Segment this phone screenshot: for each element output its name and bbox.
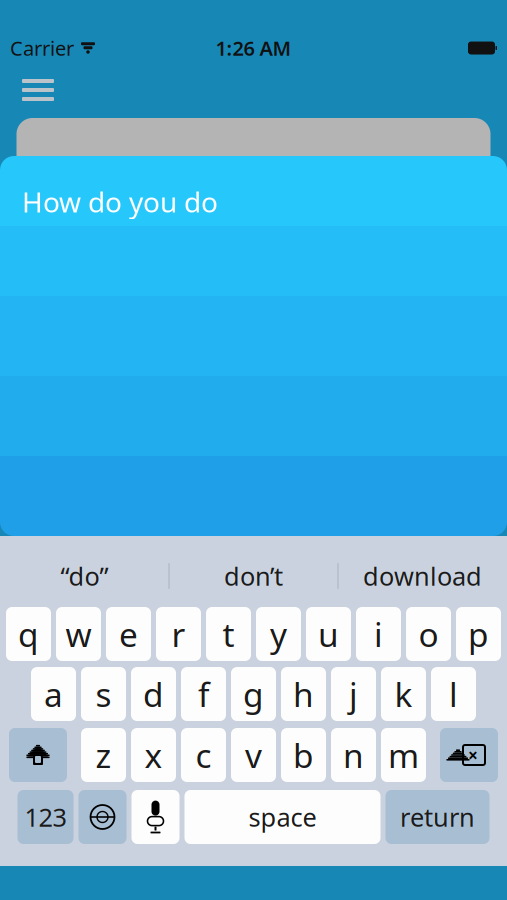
staticText: p	[468, 612, 489, 656]
button[interactable]: Shift	[9, 728, 67, 782]
staticText: m	[388, 733, 419, 777]
button[interactable]: Menu	[14, 71, 62, 109]
staticText: download	[363, 559, 482, 593]
staticText: s	[95, 672, 111, 716]
staticText: “do”	[60, 559, 108, 593]
button[interactable]: m	[381, 728, 426, 782]
staticText: ×	[468, 743, 478, 766]
button[interactable]: return	[385, 790, 489, 844]
button[interactable]: k	[381, 667, 426, 721]
staticText: j	[349, 672, 358, 716]
staticText: 123	[24, 800, 66, 834]
staticText: h	[293, 672, 314, 716]
staticText: v	[245, 733, 262, 777]
button[interactable]: h	[281, 667, 326, 721]
button[interactable]: download	[338, 554, 506, 598]
button[interactable]: x	[131, 728, 176, 782]
staticText: k	[394, 672, 412, 716]
staticText: t	[222, 612, 234, 656]
staticText: space	[248, 800, 316, 834]
staticText: b	[293, 733, 314, 777]
button[interactable]: p	[456, 607, 501, 661]
button[interactable]: z	[81, 728, 126, 782]
staticText: n	[343, 733, 364, 777]
button[interactable]: l	[431, 667, 476, 721]
staticText: Carrier	[10, 35, 74, 61]
staticText: e	[119, 612, 138, 656]
button[interactable]: space	[184, 790, 380, 844]
staticText: y	[270, 612, 287, 656]
staticText: How do you do	[22, 183, 218, 220]
button[interactable]: 123	[17, 790, 73, 844]
staticText: w	[65, 612, 91, 656]
button[interactable]: i	[356, 607, 401, 661]
button[interactable]: u	[306, 607, 351, 661]
staticText: l	[449, 672, 458, 716]
button[interactable]: r	[156, 607, 201, 661]
staticText: q	[18, 612, 39, 656]
button[interactable]: j	[331, 667, 376, 721]
button[interactable]: n	[331, 728, 376, 782]
button[interactable]: b	[281, 728, 326, 782]
button[interactable]: q	[6, 607, 51, 661]
button[interactable]: o	[406, 607, 451, 661]
staticText: a	[44, 672, 63, 716]
button[interactable]: Next keyboard	[78, 790, 126, 844]
staticText: x	[144, 733, 162, 777]
staticText: 1:26 AM	[215, 35, 291, 61]
button[interactable]: y	[256, 607, 301, 661]
button[interactable]: don’t	[169, 554, 337, 598]
button[interactable]: f	[181, 667, 226, 721]
button[interactable]: s	[81, 667, 126, 721]
staticText: i	[374, 612, 383, 656]
staticText: u	[318, 612, 339, 656]
button[interactable]: “do”	[0, 554, 168, 598]
staticText: o	[418, 612, 438, 656]
button[interactable]: Delete	[440, 728, 498, 782]
button[interactable]: Dictation	[131, 790, 179, 844]
button[interactable]: w	[56, 607, 101, 661]
button[interactable]: a	[31, 667, 76, 721]
staticText: don’t	[224, 559, 283, 593]
button[interactable]: t	[206, 607, 251, 661]
staticText: d	[143, 672, 164, 716]
staticText: f	[198, 672, 209, 716]
staticText: z	[95, 733, 111, 777]
staticText: c	[195, 733, 211, 777]
staticText: return	[400, 800, 475, 834]
button[interactable]: d	[131, 667, 176, 721]
button[interactable]: v	[231, 728, 276, 782]
staticText: g	[243, 672, 264, 716]
button[interactable]: e	[106, 607, 151, 661]
staticText: r	[171, 612, 185, 656]
button[interactable]: g	[231, 667, 276, 721]
button[interactable]: c	[181, 728, 226, 782]
